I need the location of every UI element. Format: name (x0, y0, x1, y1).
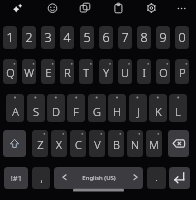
button[interactable]: Z (32, 130, 48, 157)
button[interactable]: 7 (118, 26, 132, 49)
button[interactable] (169, 167, 190, 189)
button[interactable]: T (79, 59, 93, 84)
staticText: D (52, 104, 60, 119)
button[interactable]: H (108, 94, 126, 122)
button[interactable]: G (88, 94, 106, 122)
staticText: B (113, 137, 120, 152)
button[interactable]: R (60, 59, 74, 84)
staticText: 3 (44, 29, 52, 46)
button[interactable]: 3 (41, 26, 55, 49)
staticText: 8 (140, 29, 148, 46)
button[interactable]: 2 (22, 26, 36, 49)
button[interactable]: O (156, 59, 170, 84)
button[interactable]: P (175, 59, 189, 84)
button[interactable]: !#1 (4, 167, 28, 189)
staticText: G (93, 104, 101, 119)
staticText: T (83, 65, 89, 80)
staticText: . (155, 168, 158, 184)
staticText: 2 (25, 29, 33, 46)
button[interactable]: 0 (175, 26, 189, 49)
staticText: I (142, 65, 146, 80)
staticText: E (45, 65, 52, 80)
button[interactable]: 9 (156, 26, 170, 49)
staticText: 5 (83, 29, 91, 46)
staticText: Y (103, 65, 109, 80)
staticText: U (121, 65, 129, 80)
button[interactable]: 8 (137, 26, 151, 49)
button[interactable] (6, 0, 28, 17)
staticText: W (24, 65, 34, 80)
button[interactable]: I (137, 59, 151, 84)
staticText: N (131, 137, 139, 152)
button[interactable] (168, 130, 189, 157)
button[interactable]: W (22, 59, 36, 84)
staticText: 9 (159, 29, 167, 46)
button[interactable]: F (67, 94, 85, 122)
button[interactable]: Y (99, 59, 113, 84)
button[interactable] (42, 0, 64, 17)
button[interactable]: J (129, 94, 147, 122)
staticText: P (179, 65, 186, 80)
button[interactable]: V (89, 130, 105, 157)
staticText: C (75, 137, 82, 152)
staticText: Z (37, 137, 44, 152)
button[interactable]: , (32, 167, 50, 189)
staticText: English (US) (82, 174, 116, 182)
staticText: 0 (178, 29, 186, 46)
button[interactable]: English (US) (54, 167, 143, 189)
staticText: M (149, 137, 159, 152)
button[interactable]: E (41, 59, 55, 84)
staticText: S (33, 104, 39, 119)
button[interactable] (74, 0, 96, 17)
button[interactable] (140, 0, 162, 17)
button[interactable]: S (27, 94, 45, 122)
button[interactable]: . (147, 167, 166, 189)
staticText: , (40, 170, 43, 185)
staticText: H (113, 104, 121, 119)
staticText: 1 (6, 29, 14, 46)
button[interactable]: 1 (3, 26, 17, 49)
staticText: A (12, 104, 19, 119)
button[interactable] (3, 130, 26, 157)
button[interactable]: M (146, 130, 162, 157)
button[interactable]: N (127, 130, 143, 157)
staticText: K (155, 104, 162, 119)
staticText: F (73, 104, 79, 119)
staticText: 6 (102, 29, 110, 46)
button[interactable]: 4 (60, 26, 74, 49)
button[interactable]: C (70, 130, 86, 157)
button[interactable] (171, 0, 193, 17)
button[interactable]: K (149, 94, 167, 122)
button[interactable]: U (118, 59, 132, 84)
button[interactable]: A (6, 94, 24, 122)
staticText: R (64, 65, 71, 80)
staticText: O (159, 65, 168, 80)
staticText: !#1 (11, 173, 22, 183)
button[interactable]: 6 (99, 26, 113, 49)
staticText: Q (6, 65, 15, 80)
button[interactable] (107, 0, 129, 17)
staticText: J (137, 104, 140, 119)
button[interactable]: D (47, 94, 65, 122)
button[interactable]: L (169, 94, 187, 122)
button[interactable]: X (51, 130, 67, 157)
staticText: 4 (63, 29, 71, 46)
staticText: L (175, 104, 181, 119)
button[interactable]: B (108, 130, 124, 157)
staticText: V (94, 137, 101, 152)
staticText: 7 (121, 29, 129, 46)
button[interactable]: Q (3, 59, 17, 84)
staticText: X (56, 137, 62, 152)
button[interactable]: 5 (80, 26, 94, 49)
